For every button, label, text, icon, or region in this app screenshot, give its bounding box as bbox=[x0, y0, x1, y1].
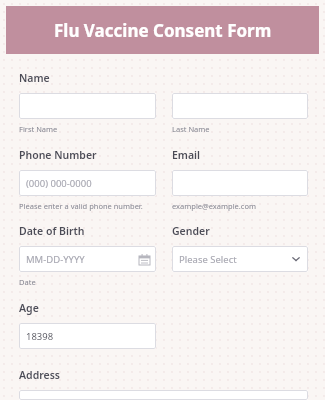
staticText: example@example.com bbox=[172, 201, 256, 211]
staticText: Email bbox=[172, 148, 201, 162]
staticText: (000) 000-0000 bbox=[26, 177, 92, 190]
staticText: MM-DD-YYYY bbox=[26, 253, 85, 266]
button[interactable]: Flu Vaccine Consent Form bbox=[6, 6, 319, 54]
button[interactable]: Please Select bbox=[172, 246, 308, 272]
staticText: Please Select bbox=[179, 253, 237, 266]
button[interactable] bbox=[19, 93, 156, 119]
staticText: Date of Birth bbox=[19, 224, 85, 238]
staticText: Please enter a valid phone number. bbox=[19, 201, 143, 211]
button[interactable]: 18398 bbox=[19, 323, 156, 349]
staticText: Address bbox=[19, 368, 61, 382]
button[interactable] bbox=[172, 93, 308, 119]
button[interactable] bbox=[19, 390, 308, 400]
staticText: Phone Number bbox=[19, 148, 97, 162]
staticText: Gender bbox=[172, 224, 210, 238]
staticText: 18398 bbox=[26, 330, 54, 343]
button[interactable] bbox=[172, 170, 308, 196]
staticText: Last Name bbox=[172, 124, 210, 134]
staticText: First Name bbox=[19, 124, 58, 134]
button[interactable]: Open calendar picker bbox=[139, 254, 150, 265]
button[interactable]: MM-DD-YYYY bbox=[19, 246, 156, 272]
staticText: Date bbox=[19, 277, 36, 287]
staticText: Age bbox=[19, 301, 39, 315]
button[interactable]: (000) 000-0000 bbox=[19, 170, 156, 196]
staticText: Flu Vaccine Consent Form bbox=[54, 19, 272, 42]
staticText: Name bbox=[19, 71, 50, 85]
button[interactable]: Expand gender options bbox=[291, 254, 301, 264]
